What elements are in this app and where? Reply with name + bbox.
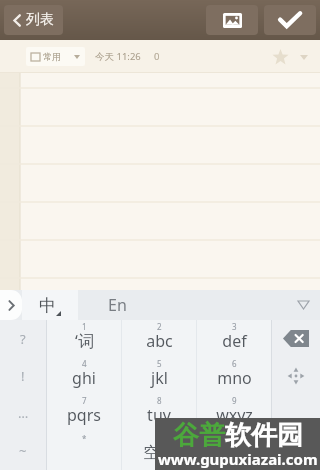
button[interactable]: 常用 [26,47,85,66]
staticText: ? [20,330,26,348]
staticText: 8 [157,395,162,406]
staticText: 今天 11:26 [95,50,141,63]
staticText: 5 [157,358,162,369]
staticText: 4 [82,358,87,369]
staticText: abc [146,330,173,352]
staticText: ~ [19,442,27,460]
button[interactable]: 1 [47,320,121,357]
staticText: def [222,330,247,352]
button[interactable]: 2 [122,320,196,357]
button[interactable]: En [78,290,286,320]
staticText: wxyz [216,404,253,426]
button[interactable]: # [197,432,271,470]
staticText: www.gupuxiazai.com [158,449,318,469]
button[interactable]: 7 [47,394,121,432]
button[interactable]: * [47,432,121,470]
staticText: ! [21,367,25,385]
button[interactable]: 8 [122,394,196,432]
button[interactable]: More options [294,47,314,67]
staticText: 中 [39,295,56,316]
staticText: ghi [72,367,96,389]
button[interactable]: 列表 [4,5,63,35]
staticText: # [231,433,237,444]
button[interactable]: 9 [197,394,271,432]
staticText: jkl [151,367,168,389]
staticText: 常用 [43,51,61,62]
staticText: 谷普 [173,419,225,452]
staticText: tuv [147,404,171,426]
button[interactable]: … [0,394,46,432]
staticText: ‘词 [75,330,94,352]
button[interactable]: Done [264,5,316,35]
staticText: pqrs [67,404,101,426]
staticText: 6 [232,358,237,369]
staticText: 9 [232,395,237,406]
staticText: 7 [82,395,87,406]
button[interactable]: ! [0,357,46,394]
button[interactable]: 中 [22,290,78,320]
staticText: … [18,404,29,422]
button[interactable]: Backspace [272,320,320,357]
staticText: 0 [154,50,160,63]
button[interactable]: Hide keyboard [286,290,320,320]
staticText: 1 [82,321,87,332]
staticText: 空格 [143,443,175,463]
button[interactable]: 0 [122,432,196,470]
button[interactable]: Expand toolbar [0,290,22,320]
button[interactable]: Move cursor [272,357,320,395]
staticText: mno [217,367,252,389]
staticText: En [108,294,127,316]
button[interactable]: 5 [122,357,196,394]
button[interactable]: 6 [197,357,271,394]
button[interactable]: 4 [47,357,121,394]
button[interactable]: Insert picture [206,5,258,35]
button[interactable]: 3 [197,320,271,357]
staticText: * [82,433,87,444]
button[interactable]: ~ [0,432,46,470]
button[interactable]: ? [0,320,46,357]
staticText: 软件园 [225,419,303,452]
staticText: 2 [157,321,162,332]
staticText: 列表 [26,11,54,29]
staticText: 3 [232,321,237,332]
button[interactable]: Favorite [266,43,294,71]
